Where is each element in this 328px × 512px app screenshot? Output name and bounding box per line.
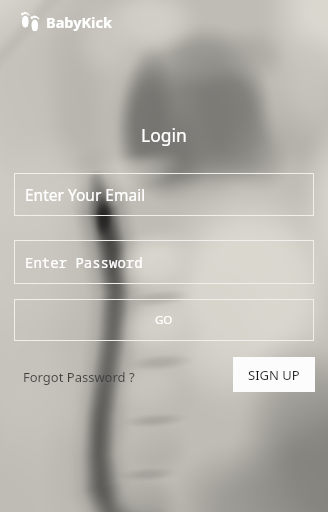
staticText: Forgot Password ? bbox=[23, 368, 135, 386]
staticText: GO bbox=[155, 312, 173, 328]
button[interactable]: Forgot Password ? bbox=[17, 364, 141, 390]
staticText: BabyKick bbox=[46, 12, 112, 32]
staticText: Login bbox=[0, 123, 328, 147]
button[interactable]: GO bbox=[14, 299, 314, 341]
staticText: Enter Your Email bbox=[25, 184, 146, 205]
button[interactable]: Enter Password bbox=[14, 240, 314, 284]
staticText: Enter Password bbox=[25, 253, 143, 272]
button[interactable]: Enter Your Email bbox=[14, 173, 314, 216]
staticText: SIGN UP bbox=[248, 366, 300, 384]
button[interactable]: SIGN UP bbox=[233, 357, 315, 392]
